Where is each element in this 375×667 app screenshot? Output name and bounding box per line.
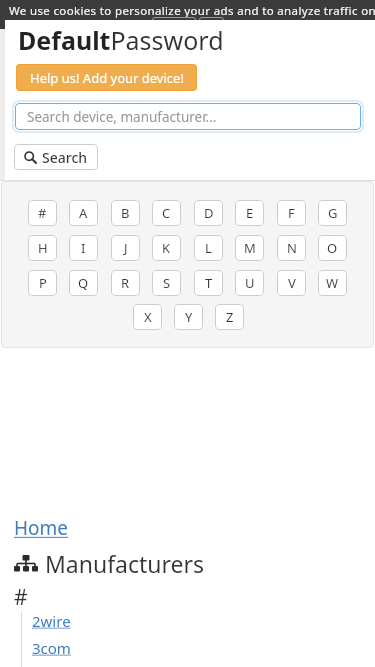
button[interactable]: C <box>152 200 181 226</box>
staticText: W <box>326 274 339 292</box>
button[interactable]: Search <box>14 144 98 170</box>
staticText: I <box>81 239 86 257</box>
staticText: D <box>204 204 214 222</box>
staticText: O <box>327 239 338 257</box>
button[interactable]: F <box>277 200 306 226</box>
staticText: F <box>288 204 295 222</box>
staticText: Help us! Add your device! <box>30 69 184 87</box>
button[interactable] <box>199 17 224 20</box>
button[interactable]: X <box>133 304 162 330</box>
button[interactable]: P <box>28 270 57 296</box>
staticText: Search <box>42 148 88 167</box>
button[interactable] <box>152 17 196 20</box>
staticText: Q <box>78 274 89 292</box>
staticText: Z <box>226 308 234 326</box>
staticText: L <box>205 239 212 257</box>
staticText: X <box>144 308 152 326</box>
button[interactable]: I <box>69 235 98 261</box>
staticText: Y <box>185 308 193 326</box>
staticText: N <box>287 239 297 257</box>
button[interactable]: 3com <box>32 638 71 658</box>
button[interactable]: E <box>235 200 264 226</box>
button[interactable]: Q <box>69 270 98 296</box>
button[interactable]: Home <box>14 515 69 541</box>
button[interactable]: # <box>28 200 57 226</box>
button[interactable]: D <box>194 200 223 226</box>
button[interactable]: V <box>277 270 306 296</box>
button[interactable]: H <box>28 235 57 261</box>
staticText: M <box>244 239 256 257</box>
button[interactable]: L <box>194 235 223 261</box>
button[interactable]: Search device, manufacturer... <box>15 103 361 130</box>
button[interactable]: O <box>318 235 347 261</box>
staticText: V <box>288 274 296 292</box>
staticText: # <box>38 204 47 222</box>
staticText: G <box>328 204 338 222</box>
button[interactable]: Y <box>174 304 203 330</box>
staticText: S <box>163 274 171 292</box>
staticText: A <box>79 204 88 222</box>
button[interactable]: 2wire <box>32 611 71 631</box>
button[interactable]: Help us! Add your device! <box>16 64 197 91</box>
staticText: # <box>14 583 28 612</box>
staticText: U <box>245 274 255 292</box>
staticText: P <box>39 274 47 292</box>
button[interactable]: A <box>69 200 98 226</box>
button[interactable]: Z <box>215 304 244 330</box>
staticText: J <box>124 239 128 257</box>
button[interactable]: T <box>194 270 223 296</box>
staticText: Manufacturers <box>45 548 205 579</box>
staticText: C <box>162 204 171 222</box>
button[interactable]: R <box>111 270 140 296</box>
button[interactable]: W <box>318 270 347 296</box>
staticText: Search device, manufacturer... <box>27 108 217 126</box>
button[interactable]: U <box>235 270 264 296</box>
button[interactable]: K <box>152 235 181 261</box>
staticText: DefaultPassword <box>18 23 224 57</box>
button[interactable]: G <box>318 200 347 226</box>
button[interactable]: M <box>235 235 264 261</box>
button[interactable]: J <box>111 235 140 261</box>
staticText: T <box>205 274 213 292</box>
staticText: K <box>162 239 171 257</box>
staticText: R <box>121 274 130 292</box>
button[interactable]: N <box>277 235 306 261</box>
staticText: We use cookies to personalize your ads a… <box>9 3 375 19</box>
staticText: H <box>38 239 48 257</box>
staticText: B <box>121 204 130 222</box>
button[interactable]: S <box>152 270 181 296</box>
button[interactable]: B <box>111 200 140 226</box>
staticText: E <box>246 204 254 222</box>
